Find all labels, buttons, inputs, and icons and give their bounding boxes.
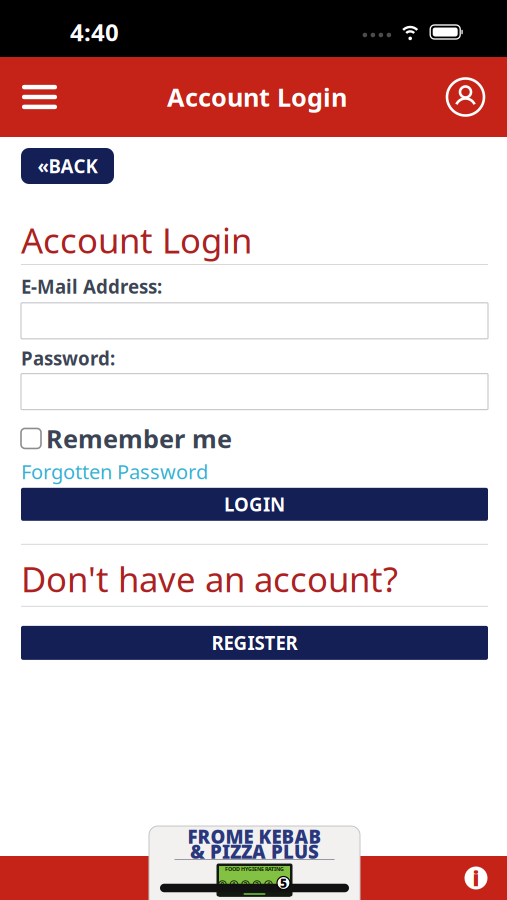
button[interactable]: Info	[464, 864, 487, 892]
button[interactable]: REGISTER	[21, 626, 488, 660]
staticText: Remember me	[46, 422, 232, 455]
staticText: 4:40	[70, 16, 119, 48]
staticText: Password:	[21, 346, 115, 371]
button[interactable]: Frome Kebab & Pizza Plus	[149, 826, 360, 900]
staticText: 2	[243, 880, 247, 889]
button[interactable]: Forgotten Password	[21, 458, 208, 485]
staticText: Don't have an account?	[21, 556, 398, 602]
button[interactable]: Remember me	[21, 422, 232, 455]
button[interactable]: LOGIN	[21, 488, 488, 521]
staticText: 0	[220, 880, 224, 889]
staticText: 1	[232, 880, 236, 889]
button[interactable]: Back	[21, 148, 114, 184]
staticText: i	[472, 864, 479, 892]
button[interactable]: Account	[447, 78, 507, 115]
staticText: & PIZZA PLUS	[190, 839, 319, 864]
button[interactable]: Menu	[0, 85, 67, 109]
staticText: «BACK	[37, 154, 97, 178]
staticText: 5	[280, 875, 287, 891]
staticText: REGISTER	[211, 630, 297, 655]
staticText: LOGIN	[224, 492, 285, 517]
staticText: Forgotten Password	[21, 458, 208, 485]
staticText: 3	[255, 880, 259, 889]
staticText: FOOD HYGIENE RATING	[225, 865, 284, 873]
staticText: E-Mail Address:	[21, 274, 162, 299]
staticText: 4	[266, 880, 270, 889]
staticText: Account Login	[167, 80, 347, 114]
staticText: Account Login	[21, 217, 252, 263]
staticText: FROME KEBAB	[187, 824, 321, 849]
